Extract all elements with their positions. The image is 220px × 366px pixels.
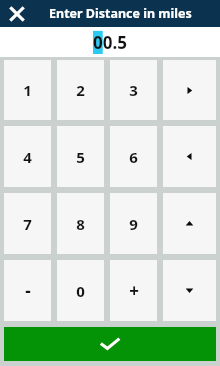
button[interactable]: 6 — [110, 126, 157, 187]
button[interactable]: - — [4, 260, 51, 321]
staticText: 3 — [129, 80, 138, 100]
staticText: 9 — [129, 214, 138, 234]
staticText: 2 — [76, 80, 85, 100]
button[interactable]: 8 — [57, 193, 104, 254]
staticText: 4 — [23, 147, 32, 167]
staticText: 0 — [76, 281, 85, 301]
button[interactable]: Confirm — [4, 327, 216, 361]
button[interactable]: Move cursor right — [163, 60, 216, 120]
button[interactable]: Close — [4, 1, 30, 27]
button[interactable]: 1 — [4, 60, 51, 120]
staticText: 00.5 — [93, 31, 127, 54]
staticText: Enter Distance in miles — [49, 5, 192, 22]
staticText: 6 — [129, 147, 138, 167]
staticText: 5 — [76, 147, 85, 167]
button[interactable]: Increase value — [163, 193, 216, 254]
staticText: - — [25, 279, 31, 302]
staticText: 1 — [23, 80, 32, 100]
staticText: 7 — [23, 214, 32, 234]
button[interactable]: Move cursor left — [163, 126, 216, 187]
button[interactable]: + — [110, 260, 157, 321]
button[interactable]: 00.5 — [0, 27, 220, 57]
button[interactable]: Decrease value — [163, 260, 216, 321]
button[interactable]: 0 — [57, 260, 104, 321]
staticText: 8 — [76, 214, 85, 234]
button[interactable]: 2 — [57, 60, 104, 120]
button[interactable]: 5 — [57, 126, 104, 187]
button[interactable]: 4 — [4, 126, 51, 187]
button[interactable]: 9 — [110, 193, 157, 254]
button[interactable]: 3 — [110, 60, 157, 120]
staticText: + — [129, 279, 139, 302]
button[interactable]: 7 — [4, 193, 51, 254]
